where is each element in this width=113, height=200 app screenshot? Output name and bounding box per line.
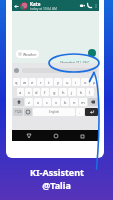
staticText: o — [84, 80, 87, 85]
button[interactable]: c — [43, 98, 51, 106]
button[interactable]: j — [68, 88, 76, 96]
staticText: v — [55, 100, 58, 105]
staticText: q — [15, 80, 18, 85]
button[interactable]: Back — [13, 3, 19, 9]
staticText: b — [64, 100, 67, 105]
staticText: today at 10:54 AM — [30, 7, 57, 11]
staticText: f — [44, 90, 46, 95]
button[interactable]: v — [52, 98, 60, 106]
button[interactable]: Video call — [79, 2, 86, 9]
button[interactable]: Delete — [88, 98, 98, 106]
staticText: g — [53, 90, 56, 95]
button[interactable]: . — [76, 108, 84, 116]
staticText: l — [89, 90, 91, 95]
button[interactable]: Call — [86, 2, 93, 9]
button[interactable]: s — [25, 88, 32, 96]
staticText: English — [49, 110, 60, 114]
button[interactable]: More options — [93, 3, 98, 8]
staticText: z — [28, 100, 30, 105]
button[interactable]: h — [59, 88, 67, 96]
staticText: d — [35, 90, 38, 95]
button[interactable]: e — [29, 78, 36, 86]
button[interactable]: n — [70, 98, 78, 106]
staticText: h — [62, 90, 65, 95]
button[interactable]: o — [81, 78, 89, 86]
button[interactable]: t — [45, 78, 53, 86]
staticText: @Talia — [42, 179, 71, 191]
button[interactable]: f — [41, 88, 49, 96]
staticText: c — [46, 100, 48, 105]
staticText: t — [48, 80, 50, 85]
button[interactable]: m — [79, 98, 87, 106]
button[interactable]: a — [17, 88, 24, 96]
button[interactable]: Home — [53, 133, 59, 139]
staticText: y — [57, 80, 60, 85]
button[interactable]: Weather — [18, 50, 37, 58]
staticText: ?123 — [15, 110, 22, 114]
button[interactable]: g — [50, 88, 58, 96]
staticText: s — [28, 90, 30, 95]
button[interactable]: r — [37, 78, 44, 86]
button[interactable]: y — [54, 78, 62, 86]
button[interactable]: Space — [33, 108, 75, 116]
button[interactable]: i — [72, 78, 80, 86]
button[interactable]: x — [34, 98, 42, 106]
staticText: Shanghai 21°-19°C — [60, 60, 90, 65]
button[interactable]: Recents — [79, 133, 85, 139]
staticText: Kate — [30, 1, 41, 7]
button[interactable]: AI assistant — [88, 49, 96, 57]
button[interactable]: l — [86, 88, 94, 96]
staticText: . — [79, 110, 81, 115]
staticText: r — [40, 80, 42, 85]
button[interactable]: w — [21, 78, 28, 86]
staticText: x — [37, 100, 40, 105]
button[interactable]: z — [25, 98, 33, 106]
button[interactable]: k — [77, 88, 85, 96]
staticText: j — [71, 90, 73, 95]
button[interactable]: p — [90, 78, 98, 86]
button[interactable]: ?123 — [13, 108, 23, 116]
staticText: m — [81, 100, 85, 105]
button[interactable]: Shift — [13, 98, 24, 106]
button[interactable]: Back — [26, 133, 32, 139]
staticText: n — [73, 100, 76, 105]
staticText: k — [80, 90, 83, 95]
button[interactable]: b — [61, 98, 69, 106]
button[interactable]: d — [33, 88, 40, 96]
button[interactable]: u — [63, 78, 71, 86]
staticText: i — [75, 80, 77, 85]
button[interactable]: q — [13, 78, 20, 86]
staticText: KI-Assistent — [30, 166, 84, 178]
staticText: u — [66, 80, 69, 85]
staticText: Weather — [23, 52, 37, 57]
button[interactable]: Shanghai 21°-19°C — [60, 58, 90, 66]
staticText: a — [19, 90, 22, 95]
staticText: e — [31, 80, 34, 85]
button[interactable]: Emoji — [24, 108, 32, 116]
button[interactable]: Enter — [85, 108, 98, 116]
staticText: p — [93, 80, 96, 85]
staticText: w — [23, 80, 27, 85]
